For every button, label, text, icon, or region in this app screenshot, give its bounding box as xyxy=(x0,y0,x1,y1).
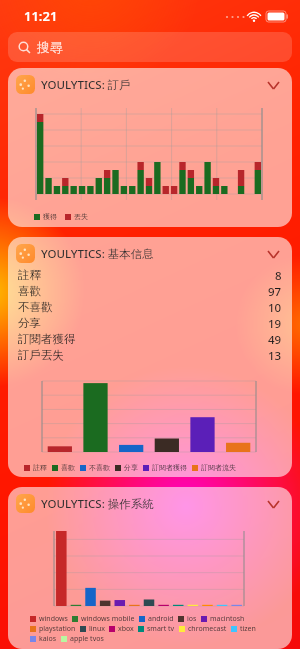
staticText: ios xyxy=(187,614,197,624)
staticText: macintosh xyxy=(210,614,245,624)
staticText: YOULYTICS: 基本信息 xyxy=(41,246,264,262)
staticText: smart tv xyxy=(147,624,175,634)
staticText: 49 xyxy=(268,332,282,348)
button[interactable]: YOULYTICS: 操作系統 xyxy=(8,487,292,517)
staticText: chromecast xyxy=(188,624,227,634)
staticText: 訂閱者獲得 xyxy=(18,332,268,346)
staticText: 8 xyxy=(275,268,282,284)
staticText: 獲得 xyxy=(43,212,57,221)
staticText: 訂閱者流失 xyxy=(201,463,236,472)
button[interactable]: YOULYTICS: 訂戶 xyxy=(8,68,292,98)
staticText: apple tvos xyxy=(70,634,104,644)
staticText: YOULYTICS: 操作系統 xyxy=(41,496,264,512)
staticText: 13 xyxy=(268,348,282,364)
staticText: 分享 xyxy=(124,463,138,472)
staticText: windows xyxy=(39,614,68,624)
staticText: 訂閱者獲得 xyxy=(152,463,187,472)
staticText: 19 xyxy=(268,316,282,332)
staticText: 11:21 xyxy=(24,7,58,25)
staticText: 不喜歡 xyxy=(89,463,110,472)
staticText: windows mobile xyxy=(81,614,135,624)
button[interactable]: YOULYTICS: 基本信息 xyxy=(8,237,292,267)
staticText: 97 xyxy=(268,284,282,300)
staticText: 註釋 xyxy=(18,268,275,282)
button[interactable]: 搜尋 xyxy=(8,32,292,62)
staticText: 10 xyxy=(268,300,282,316)
staticText: 註釋 xyxy=(33,463,47,472)
staticText: linux xyxy=(89,624,105,634)
button[interactable]: Collapse xyxy=(264,76,282,94)
staticText: playstation xyxy=(39,624,76,634)
staticText: 喜歡 xyxy=(61,463,75,472)
staticText: 搜尋 xyxy=(37,39,63,55)
button[interactable]: Collapse xyxy=(264,245,282,263)
staticText: kaios xyxy=(39,634,57,644)
staticText: 分享 xyxy=(18,316,268,330)
staticText: 丟失 xyxy=(74,212,88,221)
staticText: YOULYTICS: 訂戶 xyxy=(41,77,264,93)
staticText: android xyxy=(148,614,174,624)
staticText: xbox xyxy=(118,624,134,634)
staticText: 訂戶丟失 xyxy=(18,348,268,362)
staticText: tizen xyxy=(240,624,256,634)
button[interactable]: Collapse xyxy=(264,495,282,513)
staticText: 不喜歡 xyxy=(18,300,268,314)
staticText: 喜歡 xyxy=(18,284,268,298)
